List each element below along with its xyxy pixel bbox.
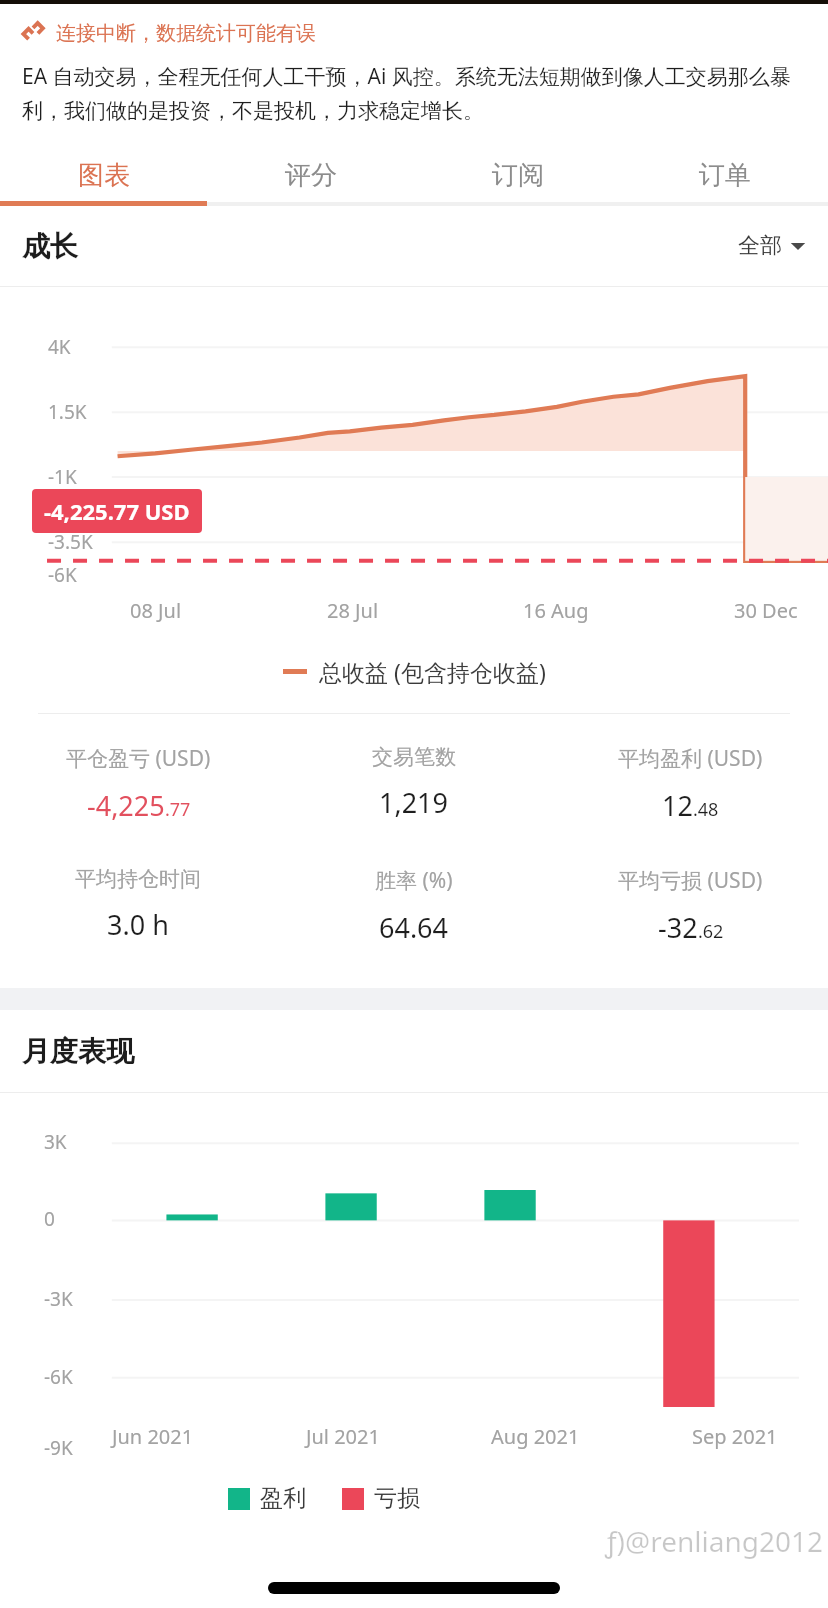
staticText: 0 — [44, 1206, 55, 1232]
staticText: 全部 — [738, 232, 782, 260]
staticText: 评分 — [285, 159, 337, 192]
staticText: .77 — [165, 797, 191, 822]
staticText: 成长 — [22, 229, 78, 264]
staticText: 平均盈利 (USD) — [618, 744, 763, 773]
staticText: -6K — [48, 562, 77, 588]
staticText: 亏损 — [374, 1484, 420, 1513]
staticText: 1,219 — [379, 784, 449, 821]
staticText: 图表 — [78, 159, 130, 192]
staticText: 订阅 — [492, 159, 544, 192]
staticText: -1K — [48, 464, 77, 490]
staticText: 月度表现 — [22, 1034, 134, 1069]
staticText: EA 自动交易，全程无任何人工干预，Ai 风控。系统无法短期做到像人工交易那么暴… — [22, 62, 806, 124]
staticText: -4,225.77 USD — [44, 496, 190, 526]
staticText: 30 Dec — [734, 597, 798, 624]
staticText: -3K — [44, 1286, 73, 1312]
staticText: 平均亏损 (USD) — [618, 866, 763, 895]
staticText: Jul 2021 — [306, 1423, 380, 1450]
staticText: -3.5K — [48, 529, 93, 555]
staticText: 订单 — [699, 159, 751, 192]
staticText: 64.64 — [379, 909, 449, 946]
staticText: Jun 2021 — [112, 1423, 194, 1450]
staticText: 12 — [662, 787, 693, 824]
staticText: -32 — [658, 909, 698, 946]
staticText: 1.5K — [48, 399, 87, 425]
button[interactable]: 订阅 — [414, 144, 621, 206]
staticText: 3K — [44, 1129, 67, 1155]
staticText: .48 — [693, 797, 719, 822]
staticText: 总收益 (包含持仓收益) — [319, 656, 546, 687]
staticText: -6K — [44, 1364, 73, 1390]
staticText: -4,225 — [87, 787, 165, 824]
staticText: 3.0 h — [107, 906, 169, 943]
staticText: Aug 2021 — [491, 1423, 580, 1450]
button[interactable]: 订单 — [621, 144, 828, 206]
staticText: 28 Jul — [327, 597, 379, 624]
staticText: 胜率 (%) — [375, 866, 453, 895]
staticText: Sep 2021 — [692, 1423, 778, 1450]
staticText: .62 — [698, 919, 724, 944]
staticText: 平仓盈亏 (USD) — [66, 744, 211, 773]
staticText: 08 Jul — [130, 597, 182, 624]
staticText: 平均持仓时间 — [75, 866, 201, 892]
button[interactable]: 图表 — [0, 144, 207, 206]
staticText: ƒ)@renliang2012 — [605, 1522, 824, 1560]
staticText: 16 Aug — [523, 597, 589, 624]
staticText: 连接中断，数据统计可能有误 — [56, 21, 316, 46]
staticText: 4K — [48, 334, 71, 360]
staticText: 交易笔数 — [372, 744, 456, 770]
button[interactable]: 评分 — [207, 144, 414, 206]
button[interactable]: 全部 — [738, 232, 806, 260]
staticText: 盈利 — [260, 1484, 306, 1513]
staticText: -9K — [44, 1435, 73, 1461]
